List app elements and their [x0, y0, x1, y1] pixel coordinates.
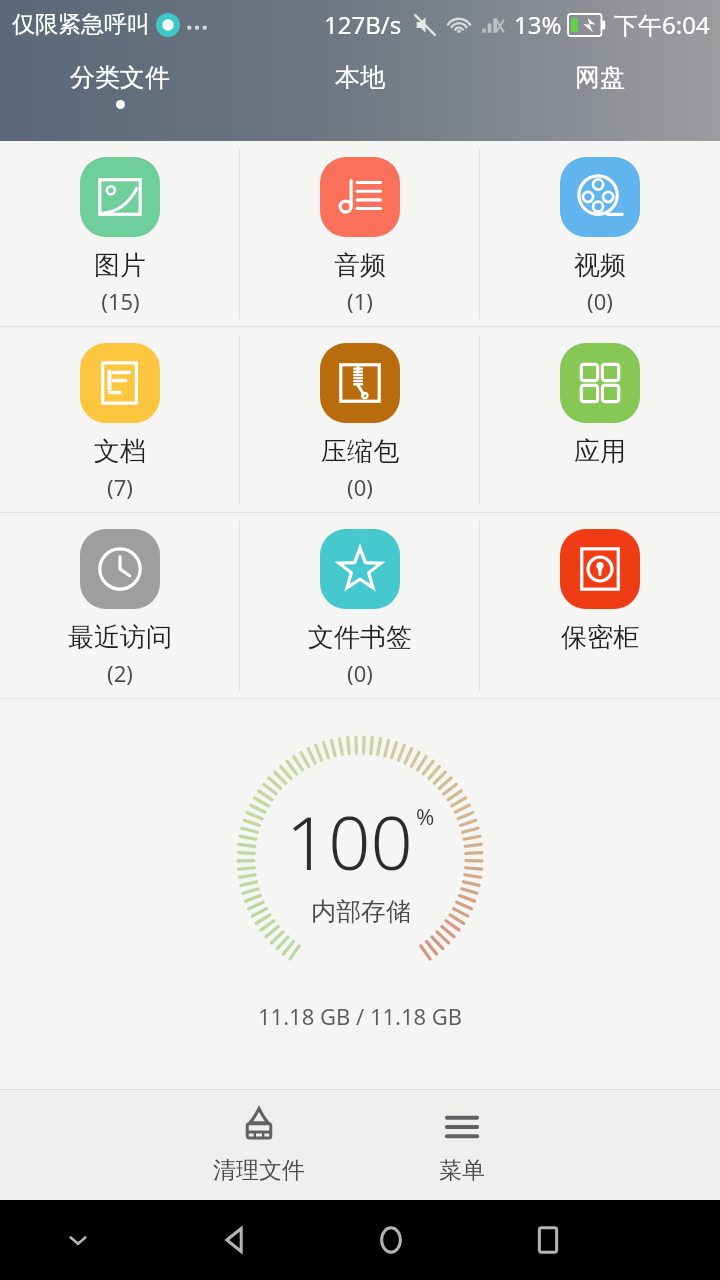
button[interactable]: 应用	[480, 327, 720, 512]
button[interactable]: 压缩包	[240, 327, 480, 512]
staticText: 127B/s	[324, 8, 402, 41]
button[interactable]: 图片	[0, 141, 240, 326]
staticText: 仅限紧急呼叫	[12, 10, 150, 39]
staticText: 内部存储	[311, 896, 411, 927]
button[interactable]: 本地	[240, 62, 480, 100]
button[interactable]: 视频	[480, 141, 720, 326]
staticText: 图片	[94, 249, 146, 282]
staticText: (15)	[101, 286, 140, 316]
staticText: 下午6:04	[614, 8, 710, 41]
staticText: (1)	[347, 286, 373, 316]
staticText: 视频	[574, 249, 626, 282]
button[interactable]: 清理文件	[157, 1106, 360, 1185]
button[interactable]: Recents	[469, 1200, 626, 1280]
staticText: 100	[286, 791, 413, 892]
staticText: 11.18 GB / 11.18 GB	[258, 1001, 463, 1031]
staticText: 保密柜	[561, 621, 639, 654]
button[interactable]: Hide keyboard	[0, 1200, 156, 1280]
staticText: 音频	[334, 249, 386, 282]
staticText: (0)	[347, 658, 373, 688]
button[interactable]: 分类文件	[0, 62, 240, 109]
button[interactable]: 最近访问	[0, 513, 240, 698]
staticText: %	[416, 801, 435, 831]
staticText: 本地	[335, 62, 385, 93]
staticText: 文档	[94, 435, 146, 468]
button[interactable]: 文档	[0, 327, 240, 512]
staticText: (0)	[347, 472, 373, 502]
button[interactable]: 文件书签	[240, 513, 480, 698]
staticText: (7)	[107, 472, 133, 502]
staticText: 应用	[574, 435, 626, 468]
button[interactable]: 网盘	[480, 62, 720, 100]
staticText: 分类文件	[70, 62, 170, 93]
button[interactable]: 保密柜	[480, 513, 720, 698]
button[interactable]: 菜单	[360, 1106, 563, 1185]
staticText: 13%	[514, 8, 562, 41]
button[interactable]: Home	[312, 1200, 469, 1280]
button[interactable]: 音频	[240, 141, 480, 326]
button[interactable]: Back	[156, 1200, 312, 1280]
staticText: 菜单	[439, 1156, 485, 1185]
staticText: 文件书签	[308, 621, 412, 654]
staticText: 网盘	[575, 62, 625, 93]
staticText: 最近访问	[68, 621, 172, 654]
staticText: 清理文件	[213, 1156, 305, 1185]
staticText: (2)	[107, 658, 133, 688]
staticText: (0)	[587, 286, 613, 316]
staticText: 压缩包	[321, 435, 399, 468]
